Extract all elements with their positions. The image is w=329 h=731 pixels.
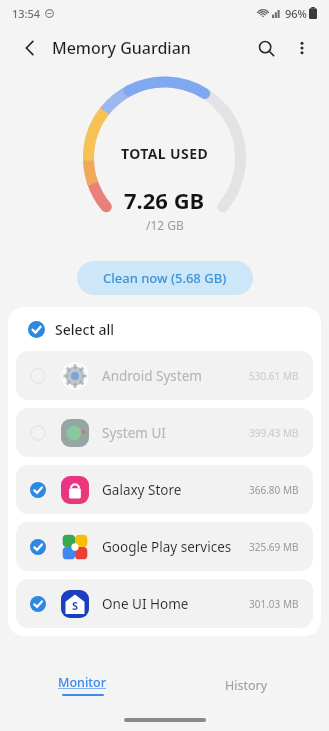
- staticText: 7.26 GB: [124, 185, 205, 215]
- staticText: 325.69 MB: [249, 540, 299, 554]
- button[interactable]: S: [16, 579, 313, 628]
- button[interactable]: Android System: [16, 351, 313, 400]
- staticText: 399.43 MB: [249, 426, 299, 440]
- button[interactable]: System UI: [16, 408, 313, 457]
- staticText: 366.80 MB: [249, 483, 299, 497]
- button[interactable]: Galaxy Store: [16, 465, 313, 514]
- staticText: Android System: [102, 367, 249, 385]
- staticText: TOTAL USED: [121, 144, 209, 163]
- button[interactable]: History: [164, 661, 329, 709]
- staticText: Select all: [55, 320, 114, 339]
- button[interactable]: More options: [287, 33, 317, 63]
- staticText: System UI: [102, 424, 249, 442]
- staticText: Monitor: [58, 674, 107, 691]
- staticText: /12 GB: [146, 217, 184, 233]
- button[interactable]: Google Play services: [16, 522, 313, 571]
- staticText: 13:54: [12, 6, 41, 21]
- staticText: One UI Home: [102, 595, 249, 613]
- staticText: Clean now (5.68 GB): [103, 269, 227, 287]
- staticText: 301.03 MB: [249, 597, 299, 611]
- staticText: 530.61 MB: [249, 369, 299, 383]
- button[interactable]: Clean now (5.68 GB): [77, 261, 253, 295]
- button[interactable]: Monitor: [0, 661, 164, 709]
- staticText: 96%: [285, 6, 307, 21]
- staticText: Memory Guardian: [52, 37, 191, 59]
- button[interactable]: Back: [14, 32, 46, 64]
- staticText: History: [225, 677, 268, 694]
- staticText: S: [72, 598, 79, 613]
- staticText: Google Play services: [102, 538, 249, 556]
- button[interactable]: Select all: [8, 307, 321, 351]
- staticText: Galaxy Store: [102, 481, 249, 499]
- button[interactable]: Search: [249, 31, 283, 65]
